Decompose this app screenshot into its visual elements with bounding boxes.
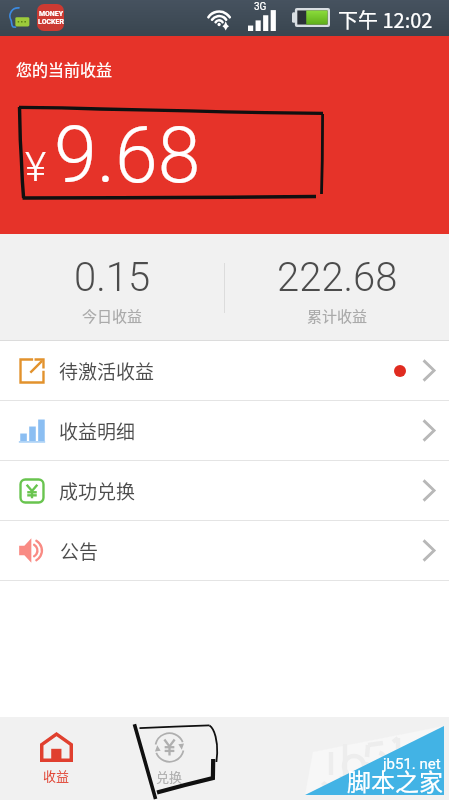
staticText: 待激活收益 — [59, 357, 155, 385]
staticText: 222.68 — [277, 254, 398, 301]
staticText: 累计收益 — [307, 305, 368, 327]
button[interactable]: Exchange — [113, 717, 225, 800]
staticText: 今日收益 — [82, 305, 143, 327]
button[interactable]: 收益 — [0, 717, 113, 800]
staticText: 收益 — [43, 766, 70, 785]
staticText: 公告 — [60, 537, 99, 565]
staticText: ¥ — [25, 143, 47, 191]
button[interactable]: 公告 — [0, 521, 449, 580]
staticText: 成功兑换 — [59, 477, 136, 505]
staticText: jb51. net — [383, 755, 441, 773]
staticText: 脚本之家 — [347, 763, 443, 798]
staticText: 您的当前收益 — [16, 57, 113, 80]
staticText: 9.68 — [54, 111, 201, 201]
staticText: 0.15 — [74, 254, 151, 301]
staticText: 收益明细 — [59, 417, 136, 445]
other: Exchange — [153, 732, 186, 763]
button[interactable]: 收益明细 — [0, 401, 449, 460]
staticText: MONEY LOCKER — [38, 10, 64, 26]
staticText: 3G — [254, 1, 267, 13]
other: WiFi — [205, 4, 235, 31]
button[interactable]: 待激活收益 — [0, 341, 449, 400]
button[interactable]: 成功兑换 — [0, 461, 449, 520]
staticText: 下午 12:02 — [338, 5, 433, 34]
staticText: 兑换 — [156, 767, 183, 786]
